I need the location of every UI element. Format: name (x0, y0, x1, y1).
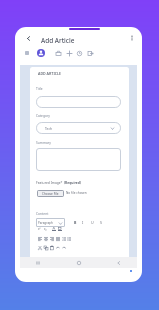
button[interactable]: Align center (44, 237, 48, 241)
staticText: S (100, 220, 102, 225)
button[interactable]: New tab (64, 48, 74, 58)
button[interactable]: Share (85, 48, 95, 58)
staticText: Category (36, 113, 51, 117)
staticText: Summary (36, 140, 51, 144)
button[interactable]: Account (36, 48, 46, 58)
staticText: Featured Image* (36, 180, 64, 184)
staticText: I (82, 220, 84, 225)
button[interactable]: Home (75, 259, 83, 267)
button[interactable]: Paragraph (36, 218, 65, 227)
button[interactable]: Redo (62, 246, 66, 250)
staticText: Tech (45, 126, 53, 130)
button[interactable]: Undo (56, 246, 60, 250)
button[interactable]: More options (127, 33, 137, 43)
button[interactable]: Highlight colour (58, 227, 62, 231)
button[interactable]: Copy (44, 246, 48, 250)
button[interactable]: Tabs (22, 48, 32, 58)
staticText: No file chosen (66, 191, 87, 195)
button[interactable]: Bookmarks (53, 48, 63, 58)
staticText: x₂ (44, 227, 47, 231)
button[interactable] (36, 96, 121, 108)
staticText: (Required) (64, 180, 82, 184)
staticText: ADD ARTICLE (38, 71, 61, 76)
button[interactable]: Tech (36, 122, 121, 134)
button[interactable]: Choose File (37, 190, 64, 197)
staticText: U (91, 220, 94, 225)
button[interactable]: Align left (38, 237, 42, 241)
button[interactable]: Back (23, 33, 33, 43)
button[interactable]: Cut (38, 246, 42, 250)
button[interactable]: Bulleted list (62, 237, 66, 241)
button[interactable]: History (74, 48, 84, 58)
button[interactable]: Numbered list (67, 237, 71, 241)
button[interactable]: Back (115, 259, 123, 267)
staticText: B (74, 220, 77, 225)
button[interactable]: Paste (50, 246, 54, 250)
button[interactable]: Align right (50, 237, 54, 241)
staticText: x² (38, 227, 41, 231)
staticText: Title (36, 86, 43, 90)
button[interactable]: Recents (34, 259, 42, 267)
button[interactable]: Text colour (52, 227, 56, 231)
staticText: Content (36, 211, 49, 215)
staticText: Choose File (42, 192, 59, 196)
staticText: Paragraph (38, 221, 53, 225)
staticText: Add Article (41, 36, 75, 45)
button[interactable] (36, 148, 121, 171)
